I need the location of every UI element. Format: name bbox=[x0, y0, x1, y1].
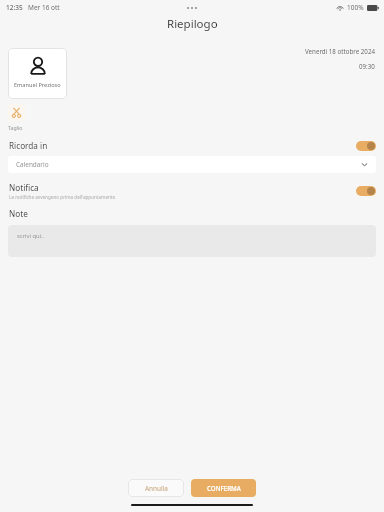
button[interactable]: Taglio bbox=[8, 104, 25, 121]
staticText: Calendario bbox=[16, 160, 49, 169]
staticText: Taglio bbox=[8, 124, 23, 131]
staticText: Emanuel Prezioso bbox=[14, 81, 61, 89]
staticText: Mer 16 ott bbox=[28, 3, 60, 12]
staticText: Ricorda in bbox=[9, 140, 48, 151]
staticText: Le notifiche avvengono prima dell'appunt… bbox=[9, 194, 116, 200]
staticText: Notifica bbox=[9, 182, 39, 193]
button[interactable]: Calendario bbox=[8, 156, 376, 173]
staticText: scrivi qui.. bbox=[17, 232, 45, 240]
staticText: 12:35 bbox=[6, 3, 23, 12]
staticText: CONFERMA bbox=[207, 484, 241, 492]
button[interactable]: Attiva bbox=[356, 141, 376, 151]
button[interactable]: Annulla bbox=[128, 479, 184, 497]
button[interactable]: CONFERMA bbox=[191, 479, 256, 497]
staticText: Venerdì 18 ottobre 2024 bbox=[305, 47, 375, 55]
staticText: Riepilogo bbox=[167, 16, 218, 32]
button[interactable]: Emanuel Prezioso bbox=[8, 48, 67, 99]
staticText: Annulla bbox=[145, 484, 168, 493]
staticText: 100% bbox=[347, 3, 364, 12]
button[interactable]: Attiva bbox=[356, 186, 376, 196]
staticText: Note bbox=[9, 208, 28, 219]
staticText: 09:30 bbox=[359, 62, 375, 70]
